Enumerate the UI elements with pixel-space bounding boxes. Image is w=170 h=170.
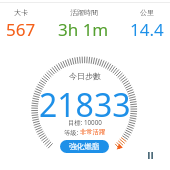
button[interactable]: 強化燃脂 <box>60 140 109 153</box>
staticText: 今日步數 <box>69 71 101 81</box>
staticText: 公里 <box>140 8 154 17</box>
staticText: 等級: <box>64 128 80 137</box>
staticText: 目標: 10000 <box>68 118 102 127</box>
staticText: 活躍時間 <box>70 8 98 17</box>
staticText: 3h 1m <box>58 18 109 41</box>
staticText: 強化燃脂 <box>69 142 100 152</box>
button[interactable]: Pause <box>141 146 159 164</box>
staticText: 21833 <box>39 83 131 127</box>
staticText: 非常活躍 <box>80 128 106 136</box>
staticText: 14.4 <box>130 18 164 41</box>
staticText: 567 <box>6 18 36 41</box>
staticText: 大卡 <box>14 8 28 17</box>
